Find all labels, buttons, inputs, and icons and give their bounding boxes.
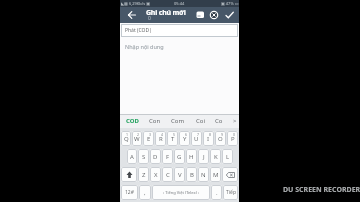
staticText: 5 <box>173 132 176 137</box>
button[interactable]: N <box>198 167 209 182</box>
button[interactable]: F <box>162 149 173 164</box>
staticText: L <box>226 153 230 161</box>
button[interactable]: K <box>210 149 221 164</box>
button[interactable]: COD <box>126 117 139 125</box>
button[interactable]: R <box>155 131 166 146</box>
button[interactable]: Q <box>121 131 131 146</box>
staticText: K <box>214 153 218 161</box>
staticText: 9 <box>221 132 224 137</box>
staticText: B <box>190 171 194 179</box>
button[interactable]: V <box>174 167 185 182</box>
staticText: T <box>171 135 175 143</box>
button[interactable]: > <box>233 117 237 125</box>
staticText: G <box>177 153 182 161</box>
staticText: 8 <box>209 132 212 137</box>
staticText: H <box>189 153 194 161</box>
staticText: F <box>166 153 170 161</box>
button[interactable]: O <box>215 131 226 146</box>
staticText: Nhập nội dung <box>125 43 164 50</box>
button[interactable]: . <box>211 185 222 200</box>
button[interactable]: T <box>167 131 178 146</box>
staticText: Phát (COD| <box>125 27 152 34</box>
staticText: X <box>154 171 158 179</box>
button[interactable]: M <box>210 167 221 182</box>
button[interactable]: L <box>222 149 233 164</box>
button[interactable]: U <box>191 131 202 146</box>
staticText: 0 <box>148 15 151 22</box>
button[interactable]: 12# <box>121 185 138 200</box>
staticText: Ghi chú mới <box>146 8 186 18</box>
staticText: E <box>147 135 151 143</box>
staticText: Y <box>183 135 187 143</box>
button[interactable]: C <box>162 167 173 182</box>
staticText: D <box>153 153 158 161</box>
staticText: , <box>144 189 146 197</box>
staticText: A <box>130 153 134 161</box>
button[interactable] <box>222 167 238 182</box>
staticText: 0 <box>233 132 236 137</box>
staticText: P <box>231 135 235 143</box>
staticText: R <box>159 135 163 143</box>
staticText: 2 <box>137 132 140 137</box>
staticText: C <box>166 171 170 179</box>
staticText: ‹ Tiếng Việt (Telex) › <box>163 190 200 195</box>
button[interactable] <box>209 10 219 20</box>
button[interactable]: A <box>127 149 137 164</box>
button[interactable] <box>121 167 137 182</box>
staticText: V <box>178 171 182 179</box>
staticText: 6 <box>185 132 188 137</box>
button[interactable]: , <box>139 185 151 200</box>
button[interactable]: Con <box>149 117 161 125</box>
button[interactable]: E <box>143 131 154 146</box>
button[interactable] <box>127 9 137 21</box>
staticText: Z <box>142 171 146 179</box>
button[interactable]: Tiếp <box>223 185 238 200</box>
staticText: J <box>203 153 205 161</box>
staticText: 4 <box>161 132 164 137</box>
button[interactable]: H <box>186 149 197 164</box>
button[interactable]: G <box>174 149 185 164</box>
staticText: 1 <box>126 132 129 137</box>
button[interactable]: X <box>150 167 161 182</box>
staticText: 05:44 <box>174 1 185 6</box>
staticText: S <box>142 153 146 161</box>
staticText: W <box>134 135 140 143</box>
button[interactable]: Y <box>179 131 190 146</box>
button[interactable]: D <box>150 149 161 164</box>
button[interactable]: Co <box>215 117 223 125</box>
staticText: M <box>213 171 219 179</box>
button[interactable] <box>196 11 205 19</box>
button[interactable]: P <box>227 131 238 146</box>
button[interactable] <box>224 10 235 20</box>
button[interactable]: Com <box>171 117 185 125</box>
staticText: I <box>207 135 210 143</box>
staticText: U <box>194 135 199 143</box>
staticText: Tiếp <box>226 189 236 196</box>
staticText: Q <box>124 135 129 143</box>
staticText: O <box>218 135 223 143</box>
staticText: N <box>201 171 206 179</box>
staticText: 12# <box>125 189 134 196</box>
button[interactable]: B <box>186 167 197 182</box>
button[interactable]: S <box>138 149 149 164</box>
button[interactable]: I <box>203 131 214 146</box>
button[interactable]: W <box>132 131 142 146</box>
staticText: 3 <box>149 132 152 137</box>
button[interactable]: Phát (COD| <box>121 24 238 37</box>
staticText: ◣▦ 6,29Kb/s ▣ <box>121 1 150 6</box>
staticText: 7 <box>197 132 200 137</box>
staticText: . <box>216 189 218 197</box>
button[interactable]: Z <box>138 167 149 182</box>
button[interactable]: J <box>198 149 209 164</box>
button[interactable]: ‹ Tiếng Việt (Telex) › <box>152 185 210 200</box>
staticText: DU SCREEN RECORDER <box>283 185 360 195</box>
staticText: ▣ 47% ▭ <box>221 1 239 6</box>
button[interactable]: Coi <box>196 117 205 125</box>
